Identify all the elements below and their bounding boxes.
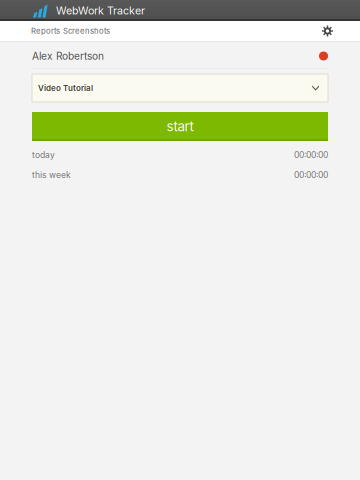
staticText: start	[166, 118, 193, 134]
staticText: Reports	[31, 26, 60, 36]
button[interactable]: start	[32, 112, 328, 141]
button[interactable]: Video Tutorial	[32, 74, 328, 102]
button[interactable]: Settings	[316, 21, 339, 41]
staticText: Alex Robertson	[32, 50, 104, 62]
staticText: this week	[32, 170, 71, 180]
staticText: Screenshots	[63, 26, 110, 36]
button[interactable]: Screenshots	[63, 21, 112, 41]
staticText: 00:00:00	[294, 170, 328, 180]
button[interactable]: Reports	[29, 21, 63, 41]
staticText: 00:00:00	[294, 150, 328, 160]
staticText: today	[32, 150, 55, 160]
staticText: Video Tutorial	[38, 83, 93, 93]
staticText: WebWork Tracker	[56, 4, 145, 17]
